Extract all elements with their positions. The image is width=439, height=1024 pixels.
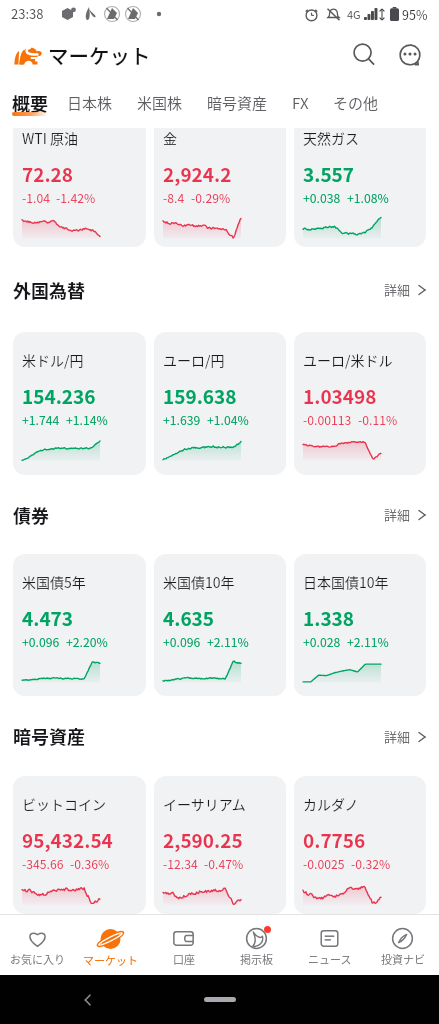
staticText: 米国債5年	[22, 572, 86, 592]
staticText: イーサリアム	[163, 794, 246, 814]
staticText: 詳細	[384, 280, 411, 299]
button[interactable]: Chat	[387, 32, 433, 78]
staticText: マーケット	[48, 40, 151, 70]
staticText: +1.14%	[66, 411, 108, 429]
button[interactable]: 日本国債10年	[294, 554, 426, 696]
staticText: 72.28	[22, 160, 74, 188]
staticText: 4.473	[22, 604, 74, 632]
button[interactable]: WTI 原油	[13, 128, 146, 247]
button[interactable]: 金	[154, 128, 286, 247]
staticText: -0.11%	[358, 411, 398, 429]
staticText: 詳細	[384, 727, 411, 746]
button[interactable]: 掲示板	[220, 917, 293, 973]
staticText: -0.47%	[204, 855, 244, 873]
staticText: 95%	[402, 5, 428, 23]
staticText: 外国為替	[13, 277, 85, 303]
staticText: 4.635	[163, 604, 215, 632]
staticText: -345.66	[22, 855, 64, 873]
staticText: +0.096	[163, 633, 201, 651]
button[interactable]: 日本株	[55, 90, 125, 122]
staticText: +2.11%	[347, 633, 389, 651]
button[interactable]: ニュース	[293, 917, 366, 973]
other: Back	[80, 992, 96, 1008]
staticText: +1.04%	[207, 411, 249, 429]
staticText: 154.236	[22, 382, 96, 410]
staticText: -0.32%	[351, 855, 391, 873]
button[interactable]: マーケット	[74, 916, 147, 974]
staticText: +2.11%	[207, 633, 249, 651]
staticText: +0.096	[22, 633, 60, 651]
button[interactable]: カルダノ	[294, 776, 426, 914]
button[interactable]: 米国株	[125, 90, 195, 122]
staticText: ビットコイン	[22, 794, 106, 814]
staticText: -0.00113	[303, 411, 352, 429]
staticText: 債券	[13, 502, 49, 528]
button[interactable]: 概要	[5, 90, 55, 120]
staticText: カルダノ	[303, 794, 359, 814]
button[interactable]: イーサリアム	[154, 776, 286, 914]
staticText: ユーロ/米ドル	[303, 350, 393, 370]
button[interactable]: ユーロ/米ドル	[294, 332, 426, 475]
staticText: 天然ガス	[303, 128, 359, 148]
button[interactable]: 米ドル/円	[13, 332, 146, 475]
staticText: FX	[292, 92, 309, 114]
button[interactable]: FX	[280, 90, 321, 122]
button[interactable]: Search	[341, 32, 387, 78]
staticText: 1.338	[303, 604, 355, 632]
button[interactable]: 投資ナビ	[366, 917, 439, 973]
staticText: 159.638	[163, 382, 237, 410]
staticText: お気に入り	[10, 951, 65, 967]
staticText: 米国株	[137, 92, 183, 114]
staticText: 金	[163, 128, 177, 148]
staticText: 4G	[347, 6, 361, 22]
staticText: -1.04	[22, 189, 50, 207]
button[interactable]: ビットコイン	[13, 776, 146, 914]
staticText: +0.038	[303, 189, 341, 207]
staticText: -1.42%	[56, 189, 96, 207]
staticText: 2,590.25	[163, 826, 243, 854]
staticText: 日本国債10年	[303, 572, 389, 592]
staticText: 投資ナビ	[381, 951, 425, 967]
staticText: 概要	[12, 90, 48, 116]
staticText: 3.557	[303, 160, 355, 188]
staticText: 0.7756	[303, 826, 366, 854]
staticText: 掲示板	[240, 951, 273, 967]
staticText: 口座	[173, 951, 195, 967]
staticText: ユーロ/円	[163, 350, 225, 370]
staticText: 暗号資産	[13, 723, 85, 749]
staticText: WTI 原油	[22, 128, 78, 148]
staticText: +1.08%	[347, 189, 389, 207]
staticText: +0.028	[303, 633, 341, 651]
staticText: ニュース	[308, 951, 352, 967]
button[interactable]: お気に入り	[0, 917, 74, 973]
button[interactable]: 詳細	[368, 719, 439, 754]
button[interactable]: 詳細	[368, 497, 439, 532]
button[interactable]: 口座	[147, 917, 220, 973]
staticText: -0.29%	[191, 189, 231, 207]
staticText: -0.36%	[70, 855, 110, 873]
staticText: 2,924.2	[163, 160, 232, 188]
staticText: 米ドル/円	[22, 350, 84, 370]
staticText: 95,432.54	[22, 826, 113, 854]
staticText: 詳細	[384, 505, 411, 524]
staticText: 暗号資産	[207, 92, 268, 114]
staticText: +1.639	[163, 411, 201, 429]
button[interactable]: 詳細	[368, 272, 439, 307]
staticText: -0.0025	[303, 855, 345, 873]
staticText: マーケット	[83, 952, 138, 968]
staticText: 日本株	[67, 92, 113, 114]
button[interactable]: 米国債10年	[154, 554, 286, 696]
button[interactable]: 暗号資産	[195, 90, 280, 122]
button[interactable]: その他	[321, 90, 391, 122]
staticText: +1.744	[22, 411, 60, 429]
staticText: その他	[333, 92, 379, 114]
staticText: 1.03498	[303, 382, 377, 410]
staticText: -8.4	[163, 189, 185, 207]
button[interactable]: ユーロ/円	[154, 332, 286, 475]
staticText: -12.34	[163, 855, 198, 873]
staticText: 23:38	[11, 4, 44, 23]
staticText: 米国債10年	[163, 572, 235, 592]
staticText: +2.20%	[66, 633, 108, 651]
button[interactable]: 天然ガス	[294, 128, 426, 247]
button[interactable]: 米国債5年	[13, 554, 146, 696]
